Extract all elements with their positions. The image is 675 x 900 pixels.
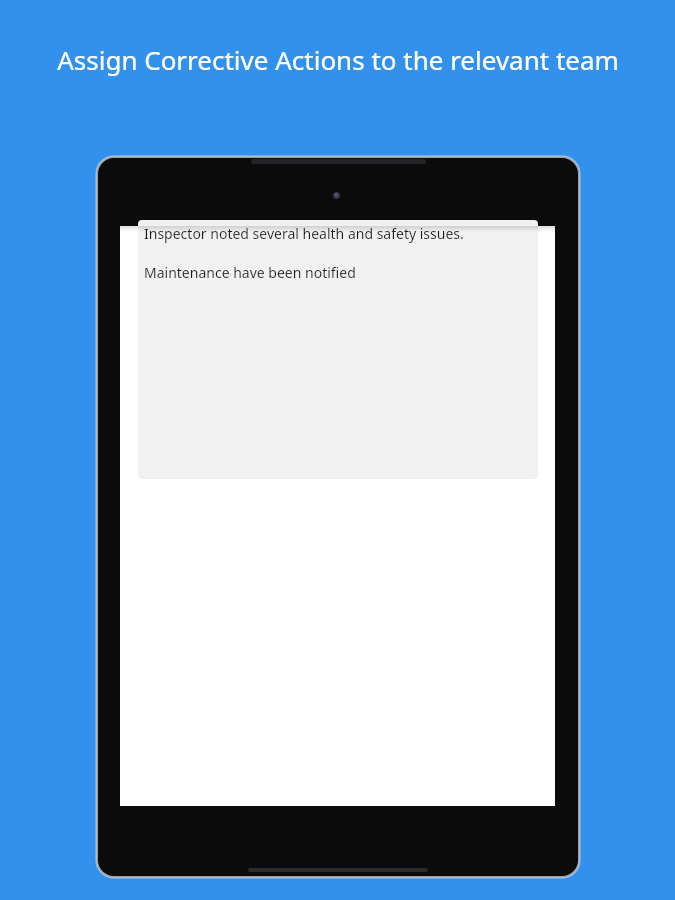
other: Front camera [333,192,340,199]
button[interactable]: Inspector noted several health and safet… [138,220,538,479]
staticText: Inspector noted several health and safet… [144,224,464,243]
staticText: Assign Corrective Actions to the relevan… [57,42,619,77]
staticText: Maintenance have been notified [144,263,356,282]
